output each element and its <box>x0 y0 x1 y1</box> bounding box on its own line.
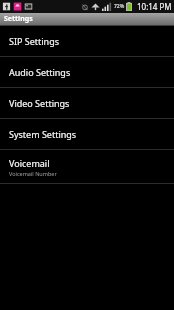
staticText: SIP Settings <box>9 35 60 47</box>
staticText: Voicemail Number <box>9 170 57 177</box>
button[interactable]: Video Settings <box>0 88 174 118</box>
button[interactable]: System Settings <box>0 119 174 149</box>
staticText: 72% <box>114 3 125 10</box>
button[interactable]: SIP Settings <box>0 26 174 56</box>
staticText: Settings <box>4 14 33 24</box>
staticText: 10:14 PM <box>137 1 172 12</box>
button[interactable]: Audio Settings <box>0 57 174 87</box>
staticText: Video Settings <box>9 97 70 109</box>
button[interactable]: Voicemail <box>0 150 174 183</box>
staticText: Audio Settings <box>9 66 71 78</box>
staticText: Voicemail <box>9 157 50 169</box>
staticText: System Settings <box>9 128 77 140</box>
